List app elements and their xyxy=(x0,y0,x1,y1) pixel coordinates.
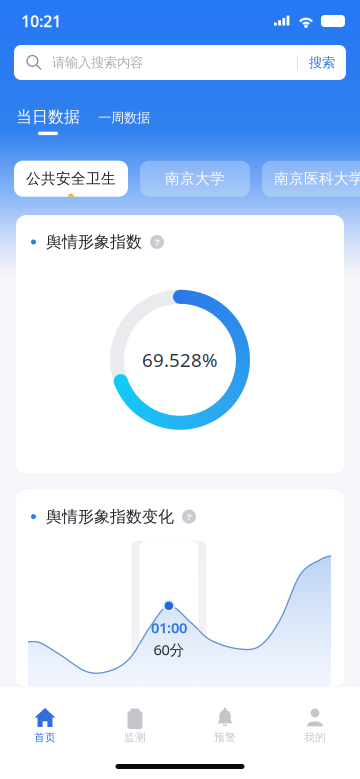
button[interactable]: 一周数据 xyxy=(80,108,150,134)
staticText: ? xyxy=(187,510,191,523)
staticText: 监测 xyxy=(124,731,146,744)
button[interactable]: 首页 xyxy=(0,702,90,749)
staticText: 一周数据 xyxy=(98,110,150,126)
staticText: 南京医科大学 xyxy=(274,170,360,188)
button[interactable]: 南京大学 xyxy=(140,161,250,197)
staticText: 当日数据 xyxy=(16,107,80,127)
staticText: 69.528% xyxy=(142,347,218,372)
button[interactable]: 我的 xyxy=(270,702,360,749)
staticText: 60分 xyxy=(153,640,184,659)
button[interactable]: 搜索 xyxy=(298,45,346,80)
button[interactable]: 预警 xyxy=(180,702,270,749)
staticText: 南京大学 xyxy=(165,170,225,188)
staticText: 01:00 xyxy=(151,618,187,637)
staticText: 首页 xyxy=(34,731,56,744)
staticText: 搜索 xyxy=(309,54,335,71)
staticText: ? xyxy=(155,236,159,248)
staticText: 预警 xyxy=(214,731,236,744)
staticText: 舆情形象指数变化 xyxy=(46,507,174,526)
staticText: 请输入搜索内容 xyxy=(52,54,143,71)
staticText: 公共安全卫生 xyxy=(26,170,116,188)
button[interactable]: 当日数据 xyxy=(16,107,80,135)
staticText: 我的 xyxy=(304,731,326,744)
staticText: 10:21 xyxy=(21,10,61,32)
button[interactable]: 南京医科大学 xyxy=(262,161,360,197)
button[interactable]: 监测 xyxy=(90,702,180,749)
staticText: 舆情形象指数 xyxy=(46,232,142,252)
button[interactable]: 公共安全卫生 xyxy=(14,161,128,197)
